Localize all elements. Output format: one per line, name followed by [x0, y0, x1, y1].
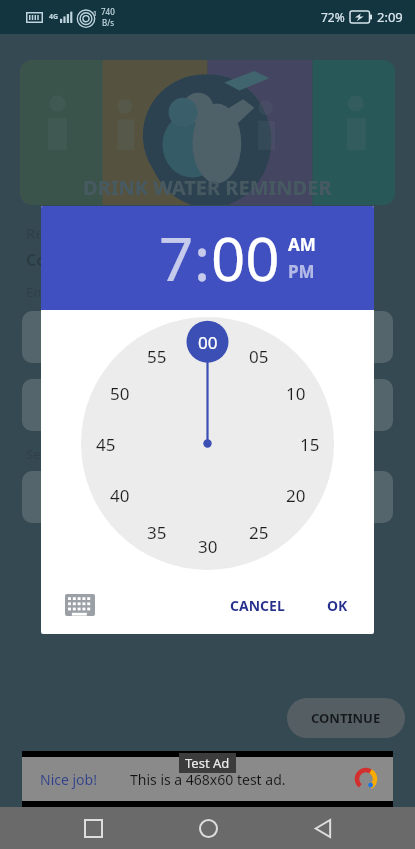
staticText: 20 [286, 484, 306, 507]
button[interactable] [99, 372, 141, 414]
button[interactable]: Switch to text input [65, 594, 95, 616]
button[interactable]: Recent apps [71, 807, 115, 849]
button[interactable] [289, 423, 331, 465]
staticText: OK [327, 596, 348, 615]
button[interactable]: Back [300, 807, 344, 849]
button[interactable] [187, 321, 229, 363]
staticText: DRINK WATER REMINDER [83, 174, 332, 201]
staticText: 50 [110, 382, 130, 405]
button[interactable]: 00 [211, 217, 280, 299]
staticText: This is a 468x60 test ad. [130, 770, 286, 789]
staticText: 00 [198, 331, 218, 354]
button[interactable]: OK [319, 590, 356, 621]
button[interactable] [136, 335, 178, 377]
button[interactable] [275, 474, 317, 516]
button[interactable] [85, 423, 127, 465]
staticText: 15 [300, 433, 320, 456]
staticText: 1 [93, 9, 98, 19]
button[interactable]: CANCEL [222, 590, 293, 621]
staticText: 740 [101, 6, 115, 17]
button[interactable]: Home [186, 807, 230, 849]
staticText: CANCEL [230, 596, 285, 615]
staticText: Enter the time you wake up and go to bed… [26, 283, 333, 301]
staticText: Configure your schedule! [26, 249, 226, 271]
button[interactable] [238, 335, 280, 377]
staticText: Select your daily goal [26, 445, 156, 463]
staticText: Test Ad [185, 754, 230, 772]
staticText: 2:09 [377, 8, 403, 26]
button[interactable] [275, 372, 317, 414]
staticText: 45 [96, 433, 116, 456]
button[interactable] [22, 471, 393, 523]
staticText: 55 [147, 345, 167, 368]
staticText: 4G [49, 12, 59, 22]
staticText: 72% [321, 9, 345, 25]
staticText: : [194, 217, 211, 299]
button[interactable] [22, 379, 393, 431]
button[interactable] [99, 474, 141, 516]
staticText: 40 [110, 484, 130, 507]
staticText: 10 [286, 382, 306, 405]
button[interactable]: CONTINUE [287, 698, 405, 738]
button[interactable]: 7 [159, 217, 194, 299]
button[interactable] [136, 511, 178, 553]
staticText: 35 [147, 521, 167, 544]
button[interactable] [187, 525, 229, 567]
button[interactable] [238, 511, 280, 553]
button[interactable]: PM [288, 260, 315, 283]
staticText: 25 [249, 521, 269, 544]
staticText: Nice job! [40, 770, 97, 789]
button[interactable]: AM [288, 233, 316, 256]
button[interactable]: Nice job! [22, 757, 393, 801]
staticText: CONTINUE [311, 709, 381, 727]
staticText: B/s [102, 17, 115, 28]
staticText: Reminder [26, 223, 95, 243]
button[interactable] [22, 311, 393, 363]
staticText: 30 [198, 535, 218, 558]
staticText: 05 [249, 345, 269, 368]
